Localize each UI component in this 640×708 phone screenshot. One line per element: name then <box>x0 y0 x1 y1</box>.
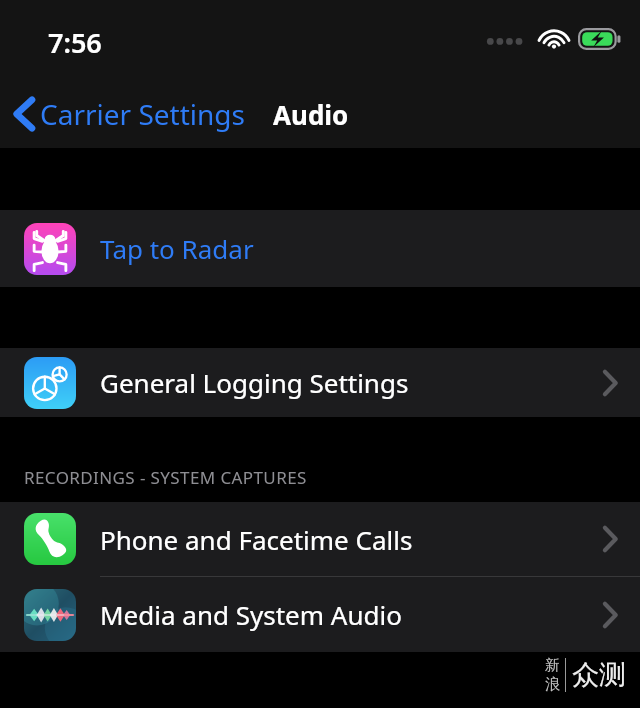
staticText: Tap to Radar <box>100 231 640 266</box>
button[interactable]: Phone and Facetime Calls <box>0 502 640 576</box>
staticText: 众测 <box>572 658 626 692</box>
staticText: Media and System Audio <box>100 597 602 632</box>
other: General Logging Settings <box>24 357 76 409</box>
staticText: 浪 <box>545 675 560 694</box>
staticText: Audio <box>273 97 349 132</box>
staticText: 新 <box>545 656 560 675</box>
button[interactable]: Carrier Settings <box>0 89 251 139</box>
staticText: RECORDINGS - SYSTEM CAPTURES <box>24 466 307 489</box>
staticText: Carrier Settings <box>40 95 245 133</box>
other: Phone and Facetime Calls <box>24 513 76 565</box>
button[interactable]: Media and System Audio <box>0 577 640 652</box>
staticText: 7:56 <box>48 24 102 61</box>
staticText: General Logging Settings <box>100 365 602 400</box>
other: Tap to Radar <box>24 223 76 275</box>
other: Media and System Audio <box>24 589 76 641</box>
button[interactable]: Tap to Radar <box>0 210 640 287</box>
staticText: Phone and Facetime Calls <box>100 522 602 557</box>
button[interactable]: General Logging Settings <box>0 348 640 417</box>
